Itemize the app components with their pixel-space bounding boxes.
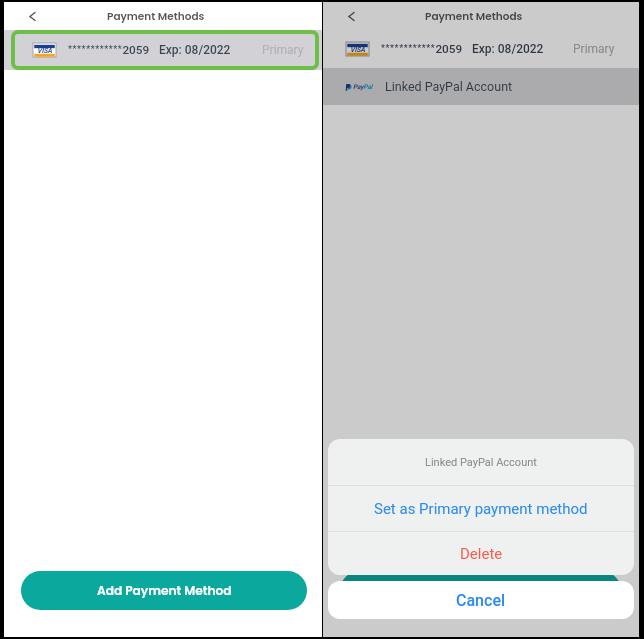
staticText: Payment Methods [107,9,205,24]
button[interactable]: Delete [328,532,634,575]
button[interactable]: Back [335,2,367,30]
staticText: Exp: 08/2022 [159,43,231,57]
button[interactable]: Add Payment Method [21,571,307,610]
button[interactable]: Cancel [328,581,634,619]
staticText: Cancel [456,591,506,610]
staticText: VISA [350,46,365,54]
staticText: Set as Primary payment method [374,500,588,518]
staticText: Linked PayPal Account [385,79,513,94]
staticText: Primary [262,43,304,57]
button[interactable]: VISA [4,30,322,70]
staticText: ************2059 [381,42,463,56]
staticText: Exp: 08/2022 [472,42,544,56]
staticText: Primary [573,42,615,56]
staticText: Linked PayPal Account [425,456,537,469]
button[interactable]: Back [16,2,48,30]
button[interactable]: PayPal [323,68,639,105]
staticText: PayPal [353,83,373,91]
staticText: VISA [37,47,52,55]
staticText: ************2059 [68,43,150,57]
staticText: Add Payment Method [97,582,232,599]
button[interactable]: Set as Primary payment method [328,486,634,531]
staticText: Payment Methods [425,9,523,24]
staticText: Delete [460,545,503,563]
button[interactable]: VISA [323,30,639,68]
